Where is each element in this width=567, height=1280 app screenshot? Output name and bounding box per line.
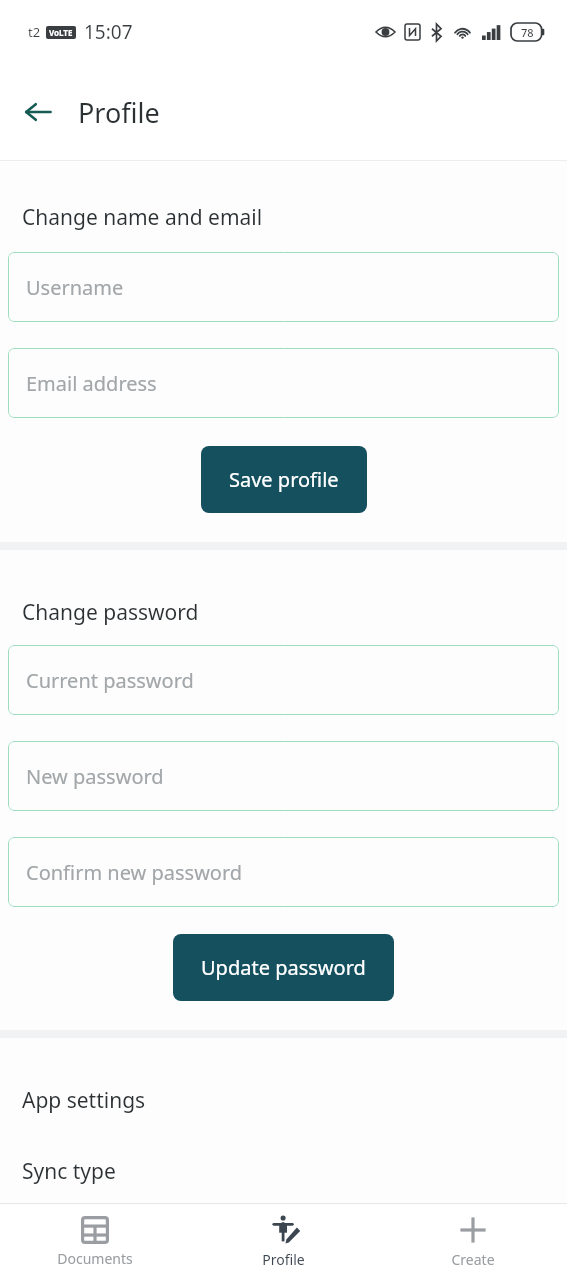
staticText: VoLTE (49, 27, 73, 38)
staticText: Profile (262, 1250, 305, 1269)
staticText: 78 (521, 25, 534, 40)
button[interactable]: New password (8, 741, 559, 811)
staticText: Email address (26, 370, 157, 397)
staticText: Save profile (229, 466, 339, 493)
staticText: 15:07 (84, 19, 133, 45)
button[interactable]: Create (378, 1204, 567, 1280)
staticText: Change password (22, 598, 199, 627)
button[interactable]: Documents (0, 1204, 189, 1280)
staticText: Documents (57, 1249, 133, 1268)
staticText: Profile (78, 94, 160, 131)
button[interactable]: Update password (173, 934, 394, 1001)
button[interactable]: Sync type (0, 1157, 567, 1186)
staticText: Current password (26, 667, 194, 694)
staticText: Username (26, 274, 124, 301)
staticText: t2 (28, 23, 41, 41)
button[interactable]: Username (8, 252, 559, 322)
button[interactable]: Email address (8, 348, 559, 418)
button[interactable]: Current password (8, 645, 559, 715)
button[interactable]: Profile (189, 1204, 378, 1280)
button[interactable]: Back (10, 84, 66, 140)
button[interactable]: Save profile (201, 446, 367, 513)
staticText: Confirm new password (26, 859, 243, 886)
staticText: App settings (22, 1086, 146, 1115)
staticText: Change name and email (22, 203, 263, 232)
button[interactable]: Confirm new password (8, 837, 559, 907)
staticText: Update password (201, 954, 366, 981)
staticText: Sync type (22, 1157, 116, 1186)
staticText: Create (451, 1250, 495, 1269)
staticText: New password (26, 763, 164, 790)
